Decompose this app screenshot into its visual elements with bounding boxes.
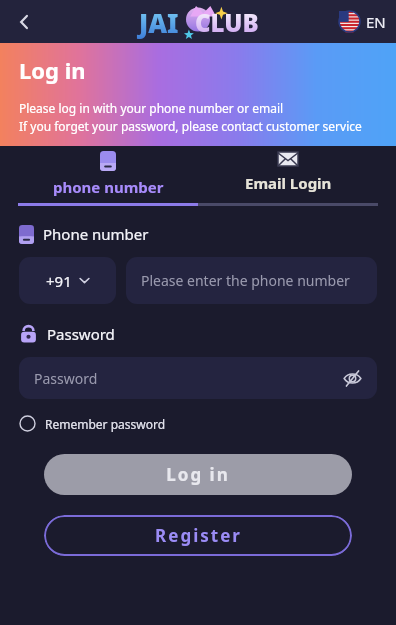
staticText: Remember password — [45, 416, 166, 432]
button[interactable]: EN — [339, 11, 386, 32]
button[interactable]: Please enter the phone number — [126, 257, 377, 304]
staticText: JAI — [139, 5, 179, 40]
staticText: CLUB — [195, 6, 259, 39]
staticText: phone number — [53, 177, 164, 197]
staticText: Email Login — [245, 173, 332, 193]
staticText: Log in — [19, 55, 86, 85]
staticText: Please log in with your phone number or … — [19, 100, 284, 116]
staticText: Password — [34, 369, 98, 388]
button[interactable]: Back — [6, 4, 42, 40]
staticText: If you forget your password, please cont… — [19, 118, 362, 134]
button[interactable]: Register — [44, 515, 352, 556]
staticText: Log in — [166, 463, 230, 486]
button[interactable]: Remember password — [19, 415, 166, 432]
staticText: +91 — [46, 271, 72, 291]
button[interactable]: phone number — [18, 146, 198, 203]
button[interactable]: Show password — [340, 366, 364, 390]
button[interactable]: Log in — [44, 454, 352, 495]
staticText: Password — [47, 324, 115, 344]
staticText: Register — [155, 524, 242, 547]
staticText: Please enter the phone number — [141, 271, 350, 290]
button[interactable]: +91 — [19, 257, 116, 304]
button[interactable]: Email Login — [198, 146, 378, 203]
button[interactable]: Password — [19, 357, 377, 399]
staticText: Phone number — [43, 224, 149, 244]
staticText: EN — [366, 12, 386, 32]
